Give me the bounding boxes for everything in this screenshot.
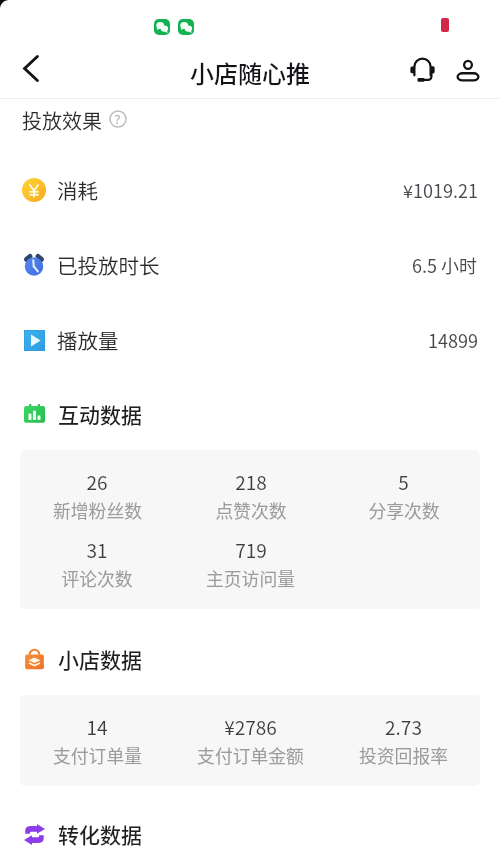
button[interactable]: Customer service [400, 47, 444, 91]
staticText: 31 [86, 536, 108, 564]
staticText: ¥1019.21 [403, 177, 478, 203]
staticText: 主页访问量 [206, 565, 295, 591]
staticText: 5 [398, 468, 409, 496]
staticText: 转化数据 [58, 819, 142, 849]
staticText: 小店数据 [58, 644, 142, 674]
button[interactable]: 播放量 [0, 302, 500, 377]
button[interactable]: 已投放时长 [0, 227, 500, 302]
staticText: 26 [86, 468, 108, 496]
staticText: 支付订单金额 [197, 742, 304, 768]
staticText: 消耗 [57, 175, 98, 205]
staticText: ¥2786 [224, 713, 277, 741]
staticText: 719 [235, 536, 267, 564]
staticText: 播放量 [57, 325, 119, 355]
staticText: 14 [86, 713, 108, 741]
button[interactable]: 消耗 [0, 152, 500, 227]
staticText: ? [115, 111, 121, 127]
staticText: 小店随心推 [190, 55, 310, 90]
staticText: 点赞次数 [215, 497, 287, 523]
staticText: 支付订单量 [53, 742, 142, 768]
staticText: 2.73 [385, 713, 422, 741]
staticText: 互动数据 [58, 399, 142, 429]
staticText: 新增粉丝数 [53, 497, 142, 523]
staticText: 218 [235, 468, 267, 496]
staticText: 投资回报率 [359, 742, 448, 768]
staticText: 分享次数 [368, 497, 440, 523]
staticText: 6.5 小时 [412, 252, 478, 278]
button[interactable]: Back [11, 48, 51, 88]
staticText: 14899 [428, 327, 478, 353]
staticText: 评论次数 [61, 565, 133, 591]
button[interactable]: Profile [446, 48, 490, 92]
staticText: 已投放时长 [57, 250, 160, 280]
staticText: 投放效果 [22, 106, 102, 132]
